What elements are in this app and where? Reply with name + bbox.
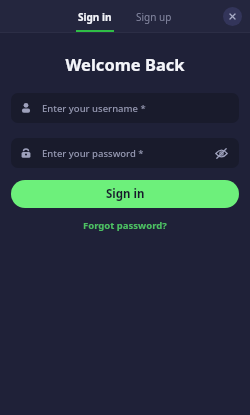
staticText: Forgot password?	[83, 219, 167, 232]
staticText: Sign in	[78, 10, 112, 24]
staticText: Sign up	[136, 10, 172, 24]
button[interactable]: Enter your password *	[11, 138, 239, 168]
button[interactable]: Close	[223, 7, 242, 26]
staticText: Enter your password *	[42, 147, 212, 160]
staticText: Sign in	[106, 186, 145, 202]
button[interactable]: Forgot password?	[0, 215, 250, 236]
button[interactable]: Show password	[212, 144, 230, 162]
staticText: Welcome Back	[0, 53, 250, 75]
button[interactable]: Sign in	[74, 0, 116, 33]
button[interactable]: Enter your username *	[11, 93, 239, 123]
button[interactable]: Sign in	[11, 180, 239, 208]
staticText: Enter your username *	[42, 102, 230, 115]
button[interactable]: Sign up	[132, 0, 176, 33]
